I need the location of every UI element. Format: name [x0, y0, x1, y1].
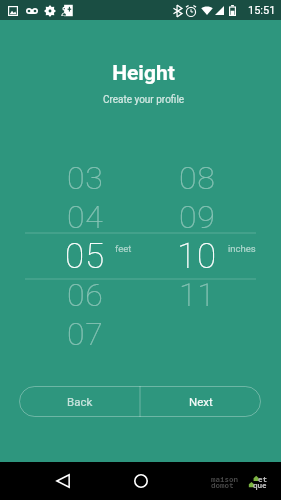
- button[interactable]: 05: [55, 236, 115, 275]
- button[interactable]: 11: [167, 275, 227, 314]
- staticText: Create your profile: [3, 94, 281, 106]
- staticText: 05: [65, 236, 105, 275]
- staticText: Next: [189, 395, 213, 408]
- staticText: 08: [179, 159, 216, 197]
- staticText: inches: [228, 243, 256, 254]
- button[interactable]: 06: [55, 275, 115, 314]
- button[interactable]: Home: [127, 467, 155, 495]
- staticText: 15:51: [248, 4, 276, 17]
- staticText: et: [258, 474, 267, 484]
- staticText: domot: [211, 480, 234, 490]
- staticText: Back: [67, 395, 93, 408]
- staticText: maison: [211, 474, 238, 484]
- button[interactable]: 09: [167, 197, 227, 236]
- staticText: 07: [67, 315, 104, 353]
- staticText: feet: [115, 243, 132, 254]
- button[interactable]: Back: [49, 467, 77, 495]
- button[interactable]: 04: [55, 197, 115, 236]
- staticText: 11: [179, 276, 216, 314]
- staticText: 03: [67, 159, 104, 197]
- staticText: 06: [67, 276, 104, 314]
- staticText: Height: [3, 61, 281, 86]
- button[interactable]: 08: [167, 158, 227, 197]
- staticText: que: [253, 480, 267, 490]
- button[interactable]: Next: [140, 386, 261, 417]
- button[interactable]: 07: [55, 314, 115, 353]
- staticText: 04: [67, 198, 104, 236]
- staticText: 10: [177, 236, 217, 275]
- button[interactable]: Back: [19, 386, 140, 417]
- button[interactable]: 10: [167, 236, 227, 275]
- staticText: 09: [179, 198, 216, 236]
- button[interactable]: 03: [55, 158, 115, 197]
